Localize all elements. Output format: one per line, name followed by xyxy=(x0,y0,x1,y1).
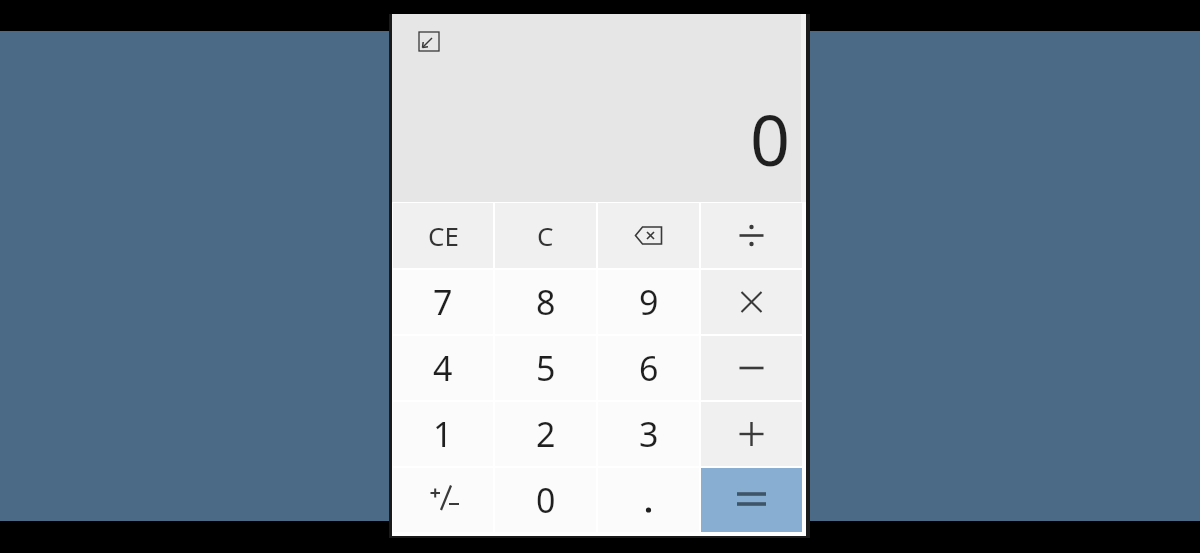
button[interactable]: 4 xyxy=(393,336,493,400)
button[interactable]: CE xyxy=(393,203,493,268)
button[interactable]: 1 xyxy=(393,402,493,466)
staticText: 8 xyxy=(536,279,556,325)
staticText: 9 xyxy=(639,279,659,325)
staticText: CE xyxy=(428,218,459,253)
button[interactable] xyxy=(393,468,493,532)
button[interactable]: 2 xyxy=(495,402,596,466)
button[interactable] xyxy=(701,203,802,268)
button[interactable]: 3 xyxy=(598,402,699,466)
staticText: 0 xyxy=(750,91,791,186)
button[interactable]: 6 xyxy=(598,336,699,400)
button[interactable] xyxy=(598,203,699,268)
button[interactable]: 5 xyxy=(495,336,596,400)
button[interactable] xyxy=(701,468,802,532)
button[interactable]: C xyxy=(495,203,596,268)
staticText: 6 xyxy=(639,345,659,391)
staticText: 7 xyxy=(433,279,453,325)
button[interactable]: 0 xyxy=(495,468,596,532)
staticText: 2 xyxy=(536,411,556,457)
staticText: 1 xyxy=(433,411,453,457)
button[interactable] xyxy=(598,468,699,532)
button[interactable]: 9 xyxy=(598,270,699,334)
button[interactable] xyxy=(418,31,440,53)
button[interactable] xyxy=(701,336,802,400)
staticText: 3 xyxy=(639,411,659,457)
button[interactable] xyxy=(701,402,802,466)
button[interactable] xyxy=(701,270,802,334)
staticText: 4 xyxy=(433,345,453,391)
button[interactable]: 8 xyxy=(495,270,596,334)
staticText: 5 xyxy=(536,345,556,391)
staticText: 0 xyxy=(536,477,556,523)
button[interactable]: 7 xyxy=(393,270,493,334)
staticText: C xyxy=(537,218,554,253)
